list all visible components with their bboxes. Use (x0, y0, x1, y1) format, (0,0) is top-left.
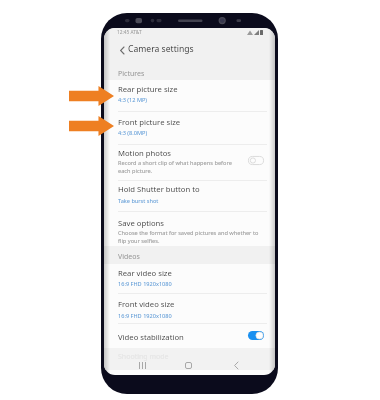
staticText: Front video size (118, 299, 175, 309)
staticText: Motion photos (118, 148, 172, 158)
staticText: 12:45 AT&T (117, 29, 142, 36)
button[interactable]: Hold Shutter button to (104, 181, 275, 197)
button[interactable]: Video stabilization (104, 329, 275, 345)
button[interactable]: Off (248, 156, 264, 165)
staticText: Pictures (118, 69, 145, 79)
staticText: Hold Shutter button to (118, 184, 200, 194)
staticText: Videos (118, 252, 140, 262)
staticText: Save options (118, 218, 164, 228)
button[interactable]: Save options (104, 215, 275, 231)
staticText: Choose the format for saved pictures and… (118, 229, 259, 245)
button[interactable]: Rear video size (104, 265, 275, 281)
staticText: Rear video size (118, 268, 172, 278)
staticText: Rear picture size (118, 84, 178, 94)
staticText: 16:9 FHD 1920x1080 (118, 280, 172, 288)
staticText: Record a short clip of what happens befo… (118, 159, 232, 175)
button[interactable]: Navigate up (112, 40, 132, 60)
button[interactable]: On (248, 331, 264, 340)
button[interactable]: Front picture size (104, 114, 275, 130)
staticText: Take burst shot (118, 197, 159, 205)
button[interactable]: Recent apps (135, 358, 149, 372)
staticText: 4:3 (12 MP) (118, 96, 148, 104)
button[interactable]: Front video size (104, 296, 275, 312)
staticText: Shooting mode (118, 352, 169, 362)
staticText: 4:3 (8.0MP) (118, 129, 148, 137)
staticText: Video stabilization (118, 332, 184, 342)
button[interactable]: Motion photos (104, 145, 275, 161)
button[interactable]: Rear picture size (104, 81, 275, 97)
button[interactable]: Home (181, 358, 195, 372)
staticText: Camera settings (128, 43, 194, 55)
button[interactable]: Back (229, 358, 243, 372)
staticText: 16:9 FHD 1920x1080 (118, 312, 172, 320)
staticText: Front picture size (118, 117, 181, 127)
